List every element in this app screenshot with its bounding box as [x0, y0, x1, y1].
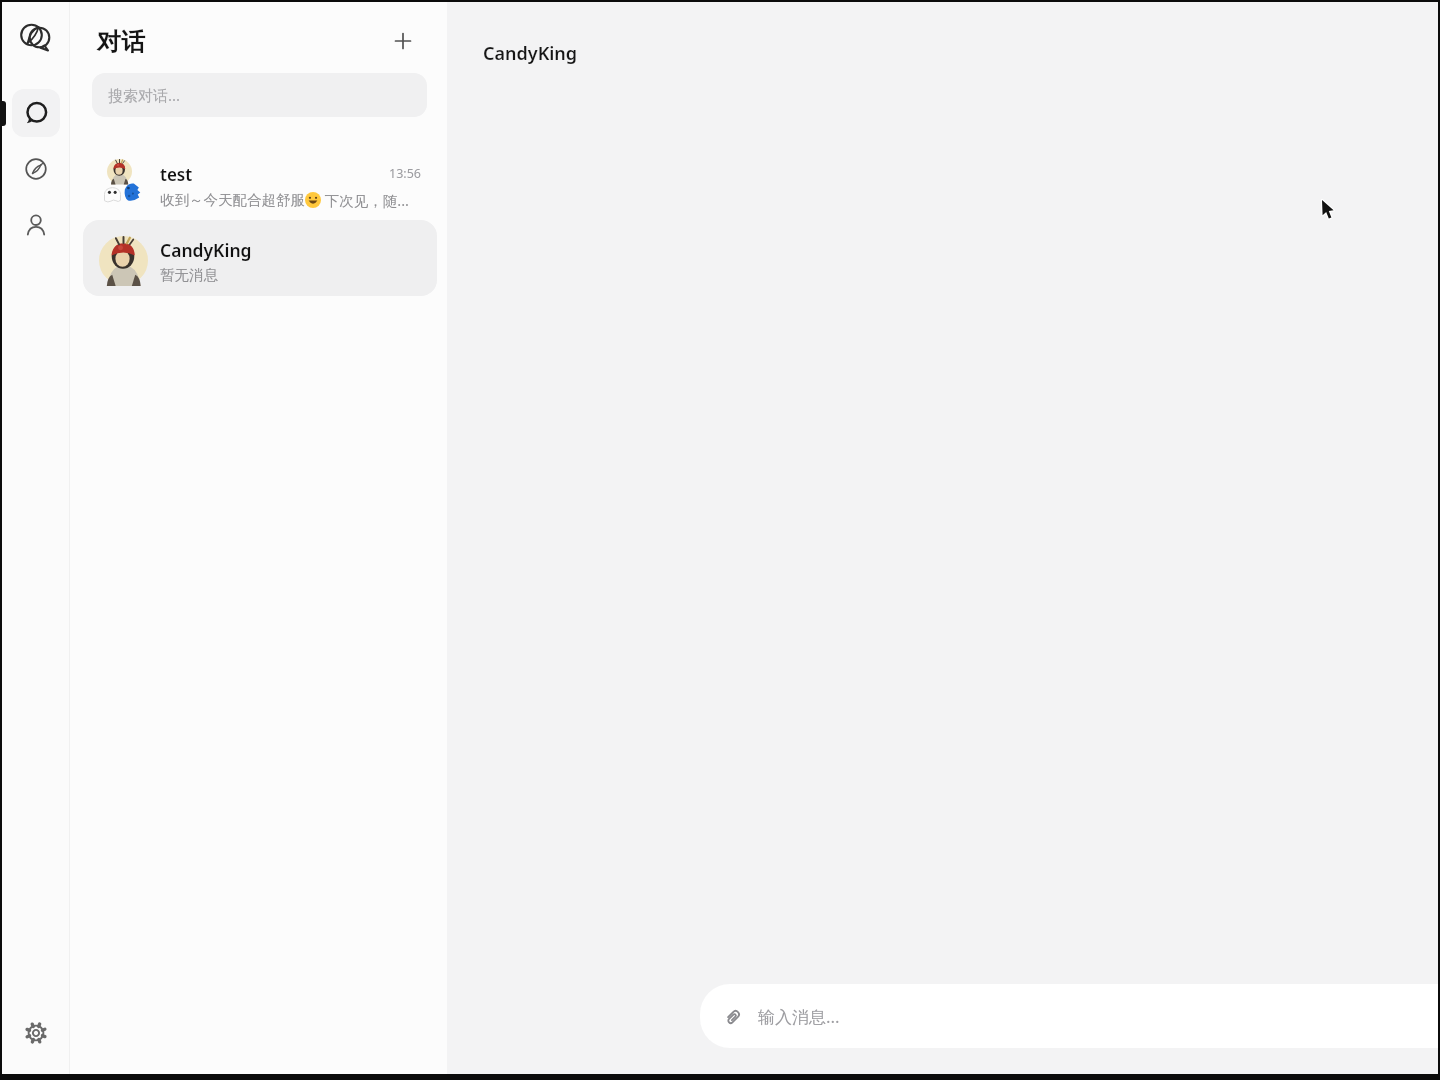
staticText: test [160, 163, 193, 186]
button[interactable] [23, 211, 49, 237]
button[interactable]: test [83, 152, 437, 216]
staticText: 收到～今天配合超舒服 [160, 191, 305, 209]
staticText: 输入消息... [758, 1005, 840, 1028]
button[interactable] [395, 33, 411, 49]
staticText: 13:56 [389, 165, 421, 182]
staticText: 对话 [97, 27, 145, 57]
button[interactable] [23, 156, 49, 182]
staticText: 下次见，随... [321, 190, 409, 210]
button[interactable]: 搜索对话... [92, 73, 427, 117]
button[interactable]: 输入消息... [700, 984, 1438, 1048]
button[interactable] [14, 16, 58, 60]
staticText: 暂无消息 [160, 266, 218, 284]
button[interactable]: CandyKing [83, 220, 437, 296]
button[interactable] [23, 1020, 49, 1046]
staticText: 搜索对话... [108, 85, 181, 105]
staticText: CandyKing [160, 238, 252, 262]
button[interactable] [12, 89, 60, 137]
staticText: CandyKing [483, 41, 578, 66]
